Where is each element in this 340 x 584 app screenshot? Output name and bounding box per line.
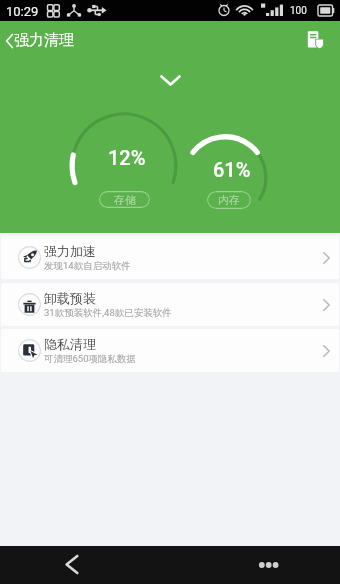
- button[interactable]: 强力清理: [5, 31, 74, 50]
- button[interactable]: 菜单: [253, 553, 283, 577]
- button[interactable]: 卸载预装: [1, 283, 339, 326]
- staticText: 100: [290, 5, 307, 17]
- button[interactable]: 返回: [60, 552, 84, 576]
- staticText: 卸载预装: [44, 290, 96, 306]
- button[interactable]: 清理报告: [305, 30, 329, 54]
- staticText: 12%: [108, 146, 146, 169]
- staticText: 发现14款自启动软件: [44, 260, 131, 272]
- button[interactable]: 强力加速: [1, 236, 339, 279]
- staticText: 强力清理: [14, 31, 74, 50]
- staticText: 隐私清理: [44, 336, 96, 352]
- button[interactable]: 展开: [160, 74, 181, 87]
- staticText: 存储: [114, 193, 136, 207]
- staticText: 31款预装软件,48款已安装软件: [44, 307, 172, 319]
- staticText: 10:29: [6, 4, 39, 19]
- staticText: 61%: [213, 158, 251, 181]
- staticText: 内存: [218, 193, 240, 207]
- button[interactable]: 内存: [207, 191, 251, 209]
- staticText: 可清理650项隐私数据: [44, 353, 137, 365]
- staticText: 强力加速: [44, 243, 96, 259]
- button[interactable]: 隐私清理: [1, 329, 339, 372]
- button[interactable]: 存储: [99, 191, 150, 208]
